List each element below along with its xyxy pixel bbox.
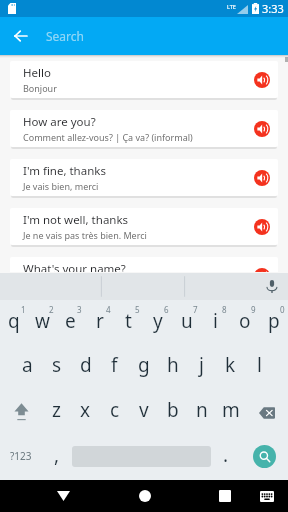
button[interactable]: v	[129, 390, 158, 435]
staticText: d	[80, 352, 92, 378]
button[interactable]: x	[71, 390, 100, 435]
staticText: ?123	[10, 449, 32, 463]
button[interactable]: f	[100, 345, 129, 390]
staticText: Hello	[23, 65, 51, 81]
button[interactable]: Play pronunciation	[251, 69, 273, 91]
staticText: s	[52, 352, 62, 378]
staticText: n	[196, 397, 208, 423]
staticText: .	[223, 442, 229, 468]
staticText: I'm fine, thanks	[23, 163, 106, 179]
staticText: r	[96, 308, 104, 334]
button[interactable]: Back	[43, 480, 84, 512]
staticText: 0	[280, 304, 285, 315]
staticText: k	[225, 352, 236, 378]
button[interactable]: z	[42, 390, 71, 435]
staticText: 3	[77, 304, 82, 315]
button[interactable]: d	[71, 345, 100, 390]
staticText: 5	[135, 304, 140, 315]
staticText: u	[181, 308, 193, 334]
button[interactable]: 7	[172, 300, 201, 345]
button[interactable]: Back	[0, 17, 40, 55]
staticText: v	[139, 397, 149, 423]
staticText: f	[111, 352, 118, 378]
staticText: p	[268, 308, 280, 334]
button[interactable]: Play pronunciation	[251, 265, 273, 272]
staticText: y	[153, 308, 163, 334]
button[interactable]: m	[216, 390, 245, 435]
button[interactable]: 8	[201, 300, 230, 345]
staticText: b	[167, 397, 179, 423]
staticText: e	[65, 308, 76, 334]
button[interactable]: 4	[85, 300, 114, 345]
button[interactable]: 6	[143, 300, 172, 345]
button[interactable]: ,	[42, 435, 71, 480]
staticText: q	[8, 308, 20, 334]
staticText: w	[35, 308, 50, 334]
staticText: Bonjour	[23, 82, 57, 94]
button[interactable]: Home	[124, 480, 165, 512]
staticText: Je ne vais pas très bien. Merci	[23, 229, 147, 241]
button[interactable]: Hello	[10, 61, 278, 98]
button[interactable]: k	[216, 345, 245, 390]
button[interactable]: Play pronunciation	[251, 167, 273, 189]
staticText: g	[138, 352, 150, 378]
button[interactable]: Voice input	[263, 278, 280, 295]
button[interactable]: 2	[28, 300, 56, 345]
button[interactable]: Search	[240, 435, 288, 480]
button[interactable]: Shift	[0, 390, 42, 435]
button[interactable]: Switch keyboard	[251, 480, 283, 512]
button[interactable]: Play pronunciation	[251, 216, 273, 238]
staticText: h	[167, 352, 179, 378]
staticText: LTE	[227, 3, 236, 10]
button[interactable]: b	[158, 390, 187, 435]
staticText: 2	[49, 304, 54, 315]
staticText: c	[110, 397, 120, 423]
button[interactable]: Backspace	[245, 390, 288, 435]
staticText: 6	[164, 304, 169, 315]
staticText: Comment allez-vous? | Ça va? (informal)	[23, 131, 193, 143]
staticText: t	[125, 308, 132, 334]
staticText: 8	[222, 304, 227, 315]
staticText: 7	[193, 304, 198, 315]
button[interactable]: a	[13, 345, 42, 390]
staticText: Search	[46, 28, 84, 44]
button[interactable]: Play pronunciation	[251, 118, 273, 140]
button[interactable]: What's your name?	[10, 257, 278, 272]
button[interactable]: How are you?	[10, 110, 278, 147]
button[interactable]: s	[42, 345, 71, 390]
button[interactable]: 3	[56, 300, 85, 345]
button[interactable]: j	[187, 345, 216, 390]
button[interactable]: g	[129, 345, 158, 390]
button[interactable]: Recents	[204, 480, 245, 512]
staticText: m	[222, 397, 240, 423]
staticText: ,	[54, 442, 60, 468]
button[interactable]: .	[211, 435, 240, 480]
staticText: 9	[251, 304, 256, 315]
button[interactable]: I'm not well, thanks	[10, 208, 278, 245]
staticText: 3:33	[262, 1, 284, 16]
button[interactable]: I'm fine, thanks	[10, 159, 278, 196]
staticText: l	[257, 352, 262, 378]
staticText: z	[52, 397, 61, 423]
staticText: 4	[106, 304, 111, 315]
staticText: i	[213, 308, 218, 334]
staticText: How are you?	[23, 114, 96, 130]
button[interactable]: c	[100, 390, 129, 435]
staticText: I'm not well, thanks	[23, 212, 129, 228]
button[interactable]: 0	[259, 300, 288, 345]
button[interactable]: n	[187, 390, 216, 435]
button[interactable]: l	[245, 345, 274, 390]
staticText: x	[80, 397, 91, 423]
staticText: o	[239, 308, 251, 334]
button[interactable]: ?123	[0, 435, 42, 480]
button[interactable]: h	[158, 345, 187, 390]
staticText: j	[199, 352, 204, 378]
button[interactable]: Space	[71, 435, 211, 480]
button[interactable]: 1	[0, 300, 28, 345]
staticText: a	[22, 352, 33, 378]
button[interactable]: 9	[230, 300, 259, 345]
staticText: Je vais bien, merci	[23, 180, 99, 192]
staticText: 1	[21, 304, 26, 315]
button[interactable]: 5	[114, 300, 143, 345]
staticText: What's your name?	[23, 261, 126, 272]
